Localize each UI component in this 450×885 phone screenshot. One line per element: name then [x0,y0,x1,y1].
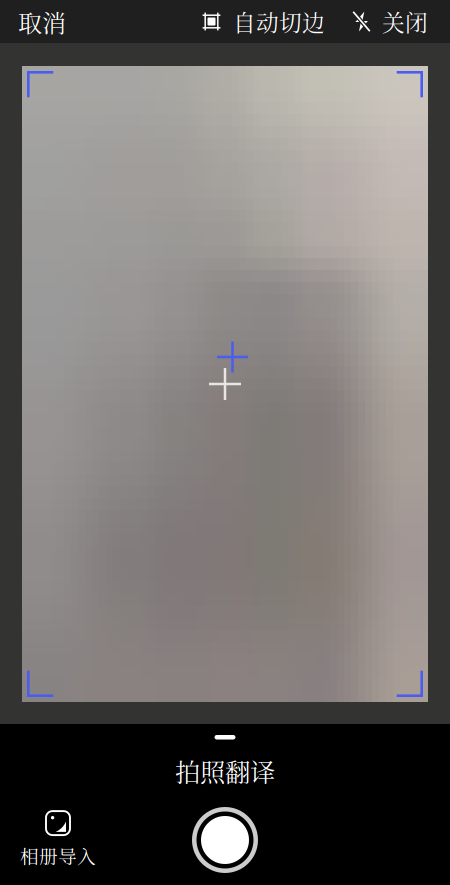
staticText: 相册导入 [20,842,96,869]
staticText: 取消 [18,4,66,39]
button[interactable]: 关闭 [352,0,450,47]
button[interactable]: Take photo [190,805,260,875]
button[interactable]: 相册导入 [0,809,116,871]
staticText: 关闭 [382,5,428,38]
button[interactable]: 取消 [0,0,80,48]
button[interactable]: 自动切边 [202,0,325,47]
staticText: 拍照翻译 [175,752,275,789]
staticText: 自动切边 [233,5,325,38]
